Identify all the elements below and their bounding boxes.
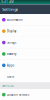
staticText: Display xyxy=(7,29,16,33)
button[interactable]: Battery xyxy=(0,48,50,60)
button[interactable]: Location services xyxy=(0,89,50,100)
button[interactable]: Display xyxy=(0,25,50,37)
staticText: Apps xyxy=(7,64,14,67)
button[interactable]: Users xyxy=(0,71,50,82)
button[interactable]: Apps xyxy=(0,60,50,71)
staticText: Users xyxy=(7,75,14,78)
staticText: Battery xyxy=(7,52,16,56)
button[interactable]: Automation xyxy=(0,14,50,25)
button[interactable]: Storage xyxy=(0,37,50,48)
staticText: Storage xyxy=(7,41,17,44)
staticText: 9:41 AM xyxy=(1,0,13,4)
staticText: Location services xyxy=(7,93,29,96)
staticText: Settings xyxy=(2,7,18,12)
staticText: Automation xyxy=(7,18,23,21)
staticText: SERVICES xyxy=(2,84,13,87)
